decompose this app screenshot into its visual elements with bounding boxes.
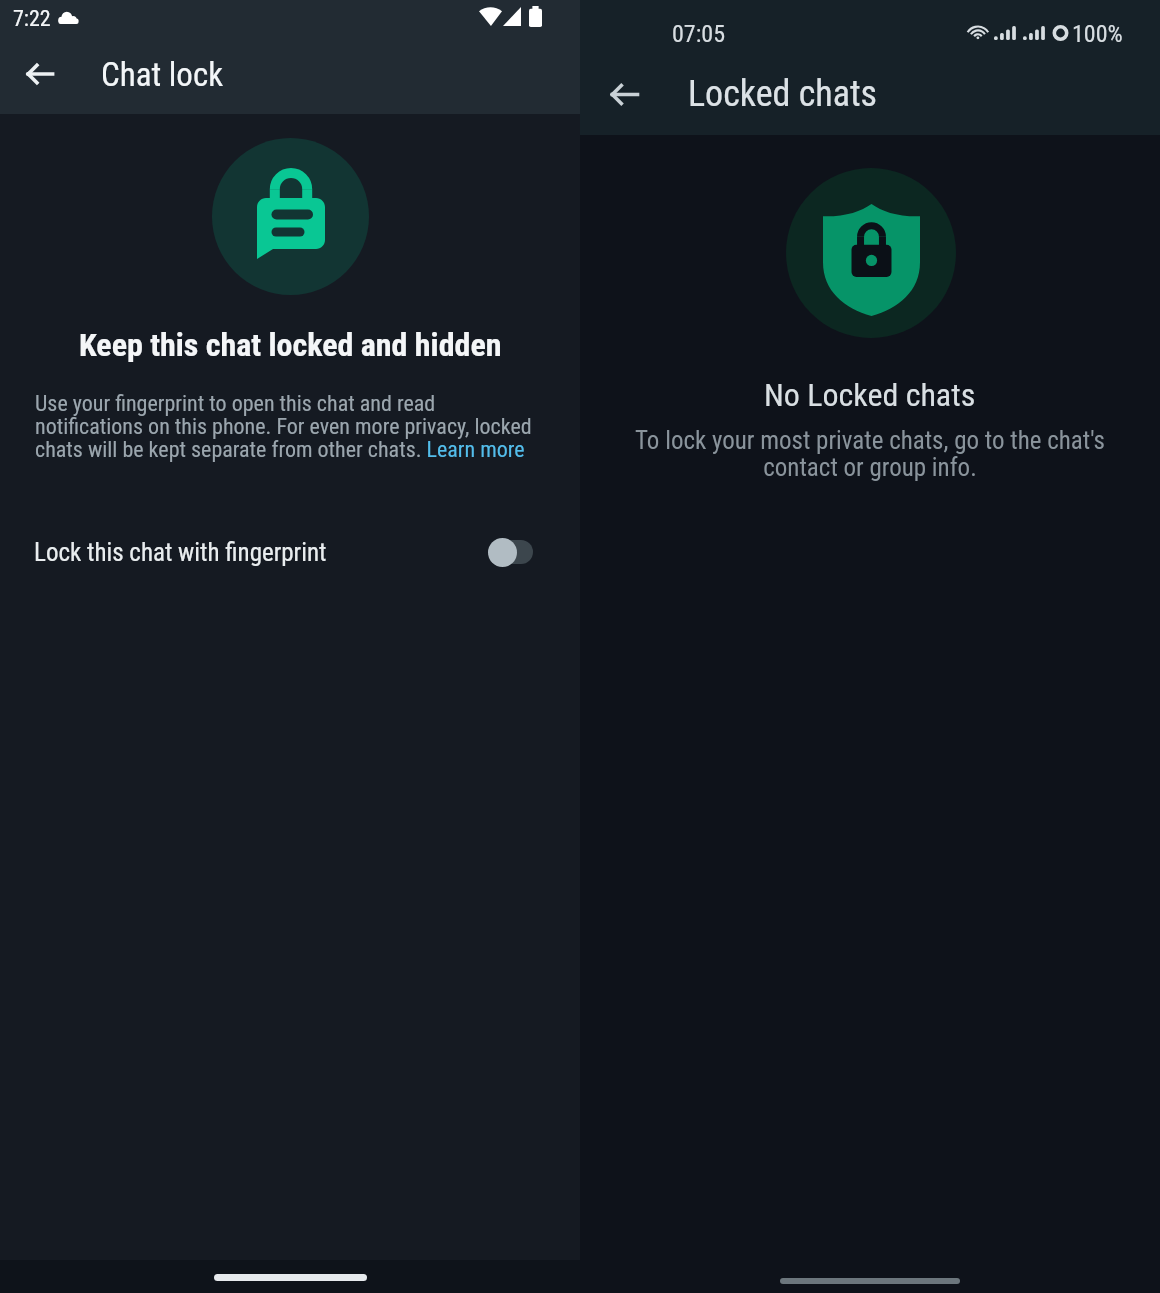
staticText: Use your fingerprint to open this chat a… — [35, 391, 547, 463]
staticText: 100% — [1072, 20, 1123, 48]
button[interactable]: Back — [598, 68, 650, 120]
staticText: Keep this chat locked and hidden — [79, 326, 502, 364]
staticText: No Locked chats — [764, 376, 976, 414]
button[interactable]: Back — [14, 48, 66, 100]
staticText: 07:05 — [672, 20, 725, 48]
staticText: 7:22 — [13, 6, 51, 32]
staticText: To lock your most private chats, go to t… — [624, 426, 1116, 482]
staticText: Locked chats — [688, 73, 878, 115]
button[interactable]: Lock this chat with fingerprint — [0, 516, 580, 588]
staticText: Lock this chat with fingerprint — [34, 538, 327, 567]
staticText: Chat lock — [101, 55, 224, 94]
